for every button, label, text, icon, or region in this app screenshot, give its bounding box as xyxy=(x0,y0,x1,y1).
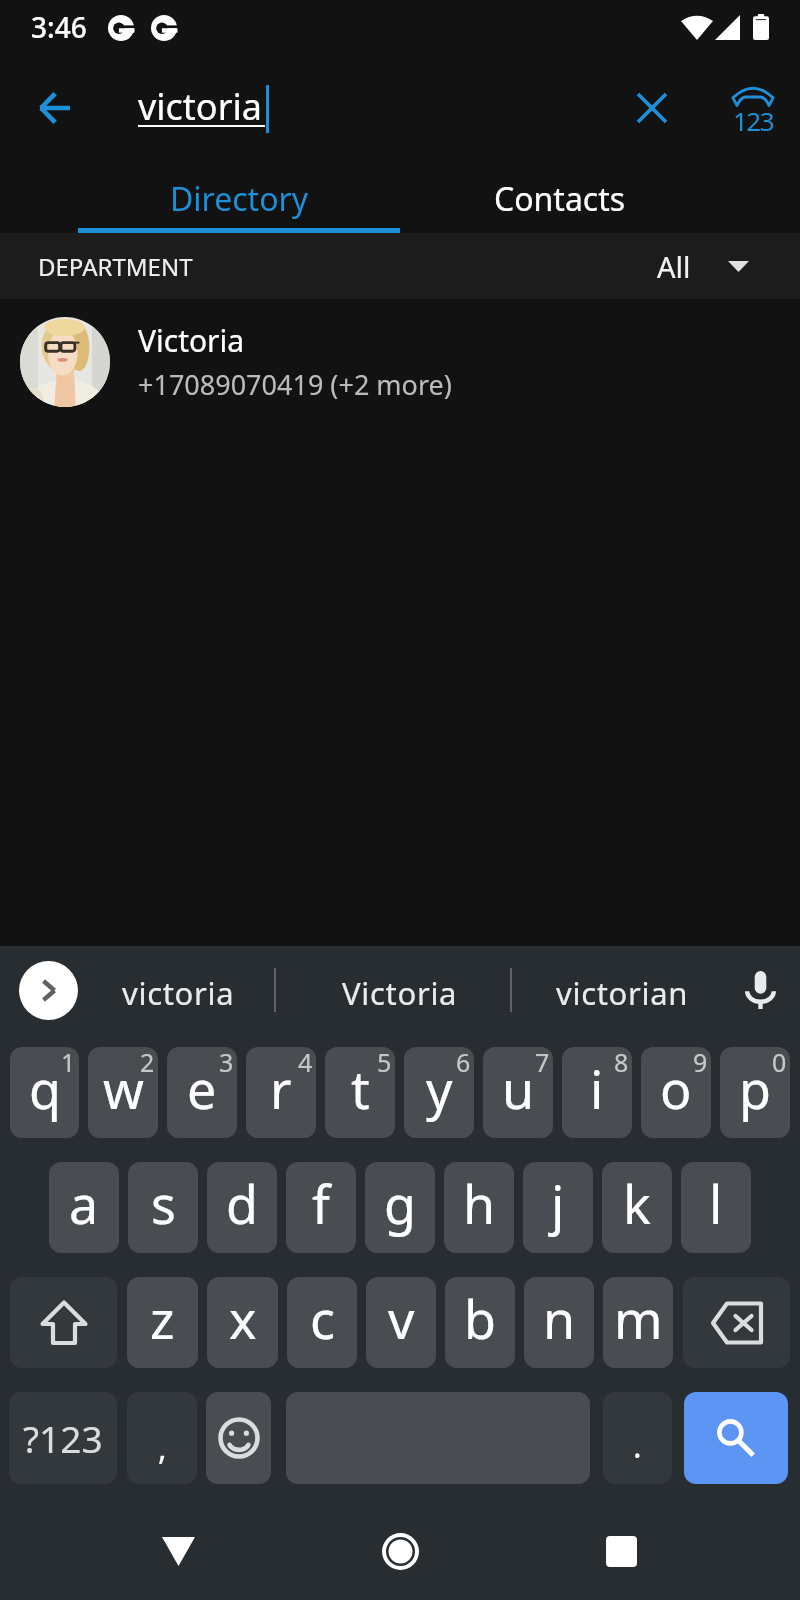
staticText: b xyxy=(464,1283,496,1354)
staticText: c xyxy=(310,1283,335,1354)
staticText: 0 xyxy=(772,1047,787,1079)
button[interactable]: Hide keyboard xyxy=(130,1503,226,1599)
staticText: 9 xyxy=(693,1047,708,1079)
staticText: a xyxy=(69,1168,99,1239)
button[interactable]: u xyxy=(483,1047,553,1138)
button[interactable]: Emoji xyxy=(206,1392,271,1484)
button[interactable]: f xyxy=(286,1162,356,1253)
staticText: x xyxy=(229,1283,257,1354)
button[interactable]: Victoria xyxy=(290,946,510,1034)
staticText: , xyxy=(158,1426,167,1470)
staticText: +17089070419 (+2 more) xyxy=(138,366,452,403)
staticText: victorian xyxy=(556,972,689,1014)
staticText: DEPARTMENT xyxy=(38,250,193,283)
button[interactable]: More suggestions xyxy=(19,961,78,1020)
button[interactable]: t xyxy=(325,1047,395,1138)
button[interactable]: y xyxy=(404,1047,474,1138)
staticText: v xyxy=(388,1283,415,1354)
button[interactable]: k xyxy=(602,1162,672,1253)
button[interactable]: . xyxy=(603,1392,672,1484)
button[interactable]: Directory xyxy=(78,158,400,234)
staticText: k xyxy=(623,1168,651,1239)
staticText: All xyxy=(657,247,691,286)
staticText: 7 xyxy=(535,1047,550,1079)
staticText: d xyxy=(226,1168,258,1239)
button[interactable]: j xyxy=(523,1162,593,1253)
button[interactable]: c xyxy=(287,1277,357,1368)
button[interactable]: Contacts xyxy=(400,158,720,234)
button[interactable]: victorian xyxy=(520,946,724,1034)
staticText: ?123 xyxy=(23,1413,103,1463)
staticText: i xyxy=(590,1053,604,1124)
button[interactable]: z xyxy=(127,1277,198,1368)
button[interactable]: DEPARTMENT xyxy=(0,233,800,299)
button[interactable]: b xyxy=(445,1277,515,1368)
button[interactable]: g xyxy=(365,1162,435,1253)
staticText: Directory xyxy=(170,177,309,221)
button[interactable]: s xyxy=(128,1162,198,1253)
button[interactable]: e xyxy=(167,1047,237,1138)
staticText: m xyxy=(614,1283,663,1354)
staticText: victoria xyxy=(122,972,235,1014)
button[interactable]: Home xyxy=(352,1503,448,1599)
staticText: y xyxy=(426,1053,453,1124)
button[interactable]: q xyxy=(10,1047,79,1138)
button[interactable]: p xyxy=(720,1047,790,1138)
staticText: u xyxy=(502,1053,535,1124)
button[interactable]: d xyxy=(207,1162,277,1253)
staticText: 3 xyxy=(219,1047,234,1079)
staticText: Victoria xyxy=(138,320,245,361)
staticText: g xyxy=(384,1168,416,1239)
staticText: w xyxy=(103,1053,144,1124)
staticText: e xyxy=(187,1053,217,1124)
button[interactable]: Back xyxy=(16,70,92,146)
button[interactable]: a xyxy=(49,1162,119,1253)
staticText: q xyxy=(29,1053,61,1124)
staticText: 8 xyxy=(614,1047,629,1079)
button[interactable]: Victoria xyxy=(0,309,800,414)
button[interactable]: Dialpad xyxy=(715,70,791,146)
button[interactable]: victoria xyxy=(86,946,270,1034)
button[interactable]: ?123 xyxy=(9,1392,117,1484)
button[interactable]: n xyxy=(524,1277,594,1368)
staticText: 123 xyxy=(733,103,774,138)
staticText: 6 xyxy=(456,1047,471,1079)
button[interactable]: Backspace xyxy=(683,1277,790,1368)
staticText: victoria xyxy=(138,82,262,131)
button[interactable]: w xyxy=(88,1047,158,1138)
staticText: 4 xyxy=(298,1047,313,1079)
staticText: j xyxy=(551,1168,565,1239)
staticText: n xyxy=(543,1283,576,1354)
button[interactable]: h xyxy=(444,1162,514,1253)
button[interactable]: Recents xyxy=(573,1503,669,1599)
button[interactable]: i xyxy=(562,1047,632,1138)
staticText: o xyxy=(660,1053,692,1124)
staticText: f xyxy=(312,1168,330,1239)
button[interactable]: r xyxy=(246,1047,316,1138)
staticText: Contacts xyxy=(494,177,626,221)
staticText: 3:46 xyxy=(31,8,87,46)
staticText: z xyxy=(150,1283,175,1354)
button[interactable]: Clear search xyxy=(614,70,690,146)
button[interactable]: l xyxy=(681,1162,751,1253)
button[interactable]: o xyxy=(641,1047,711,1138)
button[interactable]: victoria xyxy=(110,58,600,158)
button[interactable]: v xyxy=(366,1277,436,1368)
button[interactable]: Search xyxy=(684,1392,788,1484)
button[interactable]: x xyxy=(207,1277,278,1368)
button[interactable]: m xyxy=(603,1277,673,1368)
button[interactable]: , xyxy=(127,1392,197,1484)
button[interactable]: Voice input xyxy=(732,962,788,1018)
staticText: r xyxy=(270,1053,292,1124)
staticText: Victoria xyxy=(342,972,458,1014)
staticText: 5 xyxy=(377,1047,392,1079)
staticText: t xyxy=(351,1053,370,1124)
staticText: . xyxy=(633,1424,642,1468)
staticText: l xyxy=(709,1168,723,1239)
staticText: 1 xyxy=(61,1047,76,1079)
staticText: s xyxy=(151,1168,176,1239)
staticText: h xyxy=(463,1168,496,1239)
button[interactable]: Shift xyxy=(10,1277,117,1368)
staticText: 2 xyxy=(140,1047,155,1079)
